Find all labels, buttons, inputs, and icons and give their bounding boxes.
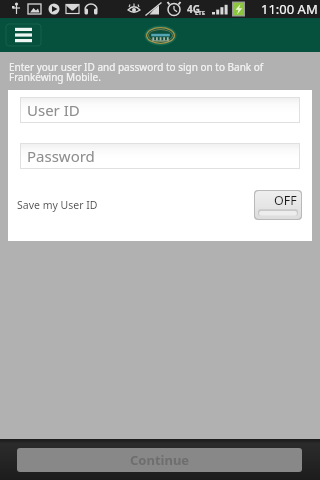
staticText: User ID [27,100,80,120]
button[interactable]: Save my User ID, off [254,190,302,220]
button[interactable]: User ID [20,97,300,123]
staticText: Enter your user ID and password to sign … [9,60,264,84]
button[interactable]: Password [20,143,300,169]
staticText: 4G [187,2,200,16]
staticText: Save my User ID [17,198,98,212]
button[interactable]: Continue [17,448,302,472]
staticText: Continue [130,451,190,469]
staticText: Password [27,146,95,166]
staticText: 11:00 AM [261,0,318,18]
button[interactable]: Menu [6,24,41,46]
staticText: OFF [274,192,297,209]
staticText: LTE [195,9,206,17]
